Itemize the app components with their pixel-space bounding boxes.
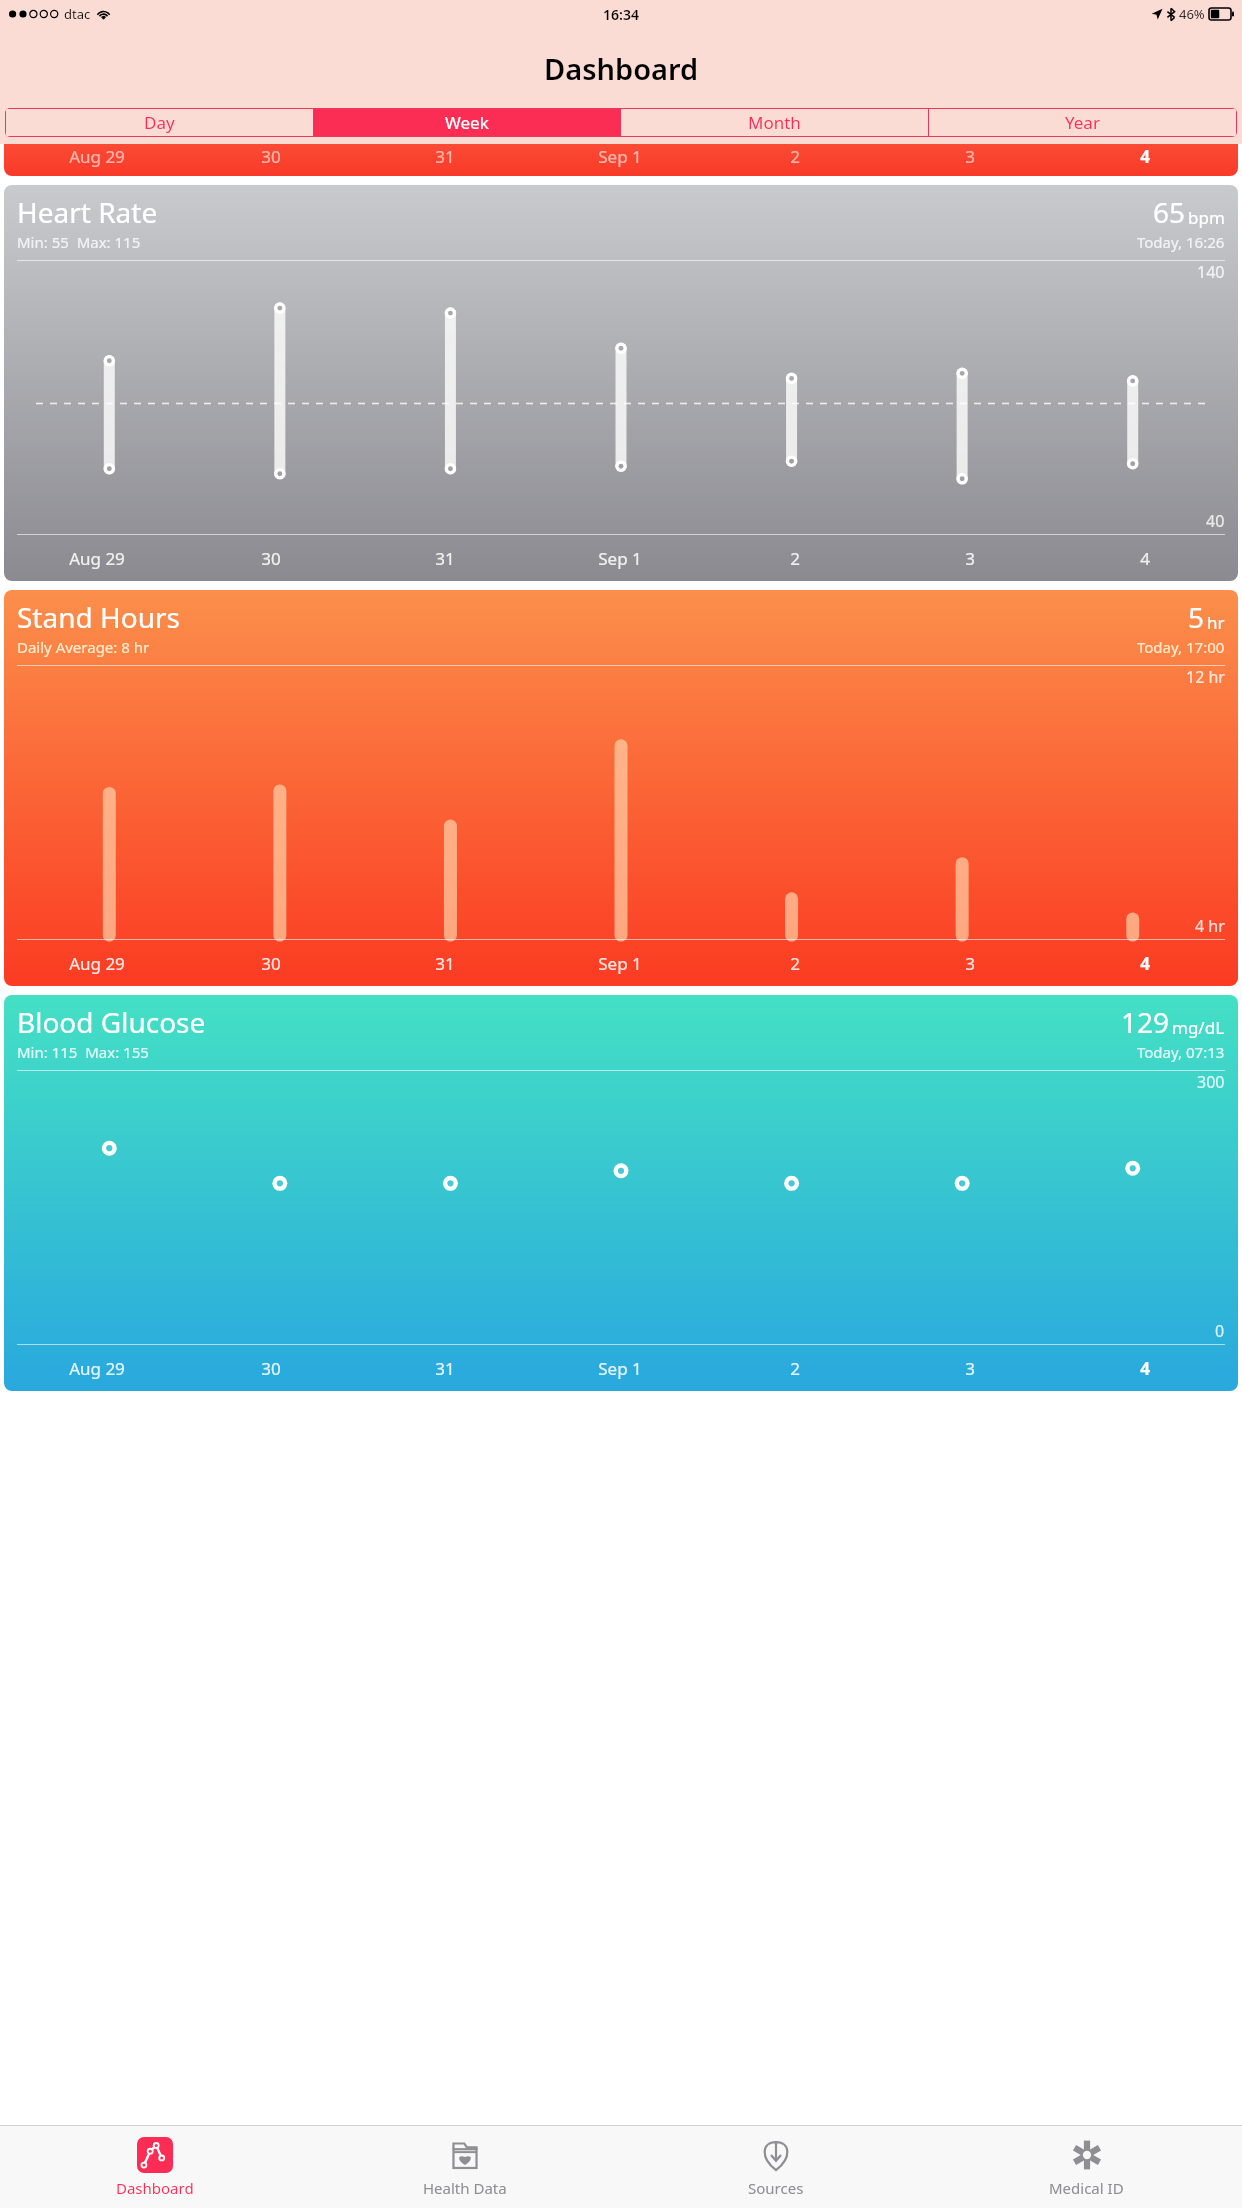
staticText: Aug 29 [69,145,125,168]
button[interactable]: Sources [620,2126,931,2208]
other: Sources [758,2137,794,2173]
staticText: hr [1207,611,1225,634]
staticText: 16:34 [603,5,639,24]
staticText: Sep 1 [598,952,642,975]
button[interactable]: Aug 29 [4,144,1238,176]
staticText: 3 [965,547,975,570]
staticText: Sep 1 [598,547,642,570]
staticText: 129 [1121,1003,1170,1041]
staticText: 5 [1188,598,1205,636]
button[interactable]: Blood Glucose [4,995,1238,1391]
staticText: Dashboard [544,49,699,88]
staticText: Today, 07:13 [1137,1042,1225,1062]
staticText: Daily Average: 8 hr [17,637,150,657]
staticText: Today, 17:00 [1137,637,1225,657]
staticText: Sep 1 [598,145,642,168]
staticText: bpm [1188,206,1225,229]
staticText: 2 [790,145,800,168]
staticText: 40 [1206,510,1225,532]
button[interactable]: Heart Rate [4,185,1238,581]
staticText: 140 [1197,261,1225,283]
staticText: Week [445,111,489,134]
staticText: Stand Hours [17,598,180,636]
button[interactable]: Medical ID [931,2126,1242,2208]
staticText: 3 [965,1357,975,1380]
staticText: Blood Glucose [17,1003,206,1041]
staticText: 30 [261,145,281,168]
staticText: 30 [261,1357,281,1380]
staticText: 31 [435,1357,455,1380]
staticText: Aug 29 [69,547,125,570]
staticText: Health Data [423,2178,507,2198]
staticText: Heart Rate [17,193,158,231]
staticText: mg/dL [1172,1016,1225,1039]
staticText: Today, 16:26 [1137,232,1225,252]
other: Health Data [447,2137,483,2173]
staticText: 3 [965,145,975,168]
staticText: 4 hr [1195,915,1225,937]
staticText: 300 [1197,1071,1225,1093]
button[interactable]: Week [314,109,620,136]
staticText: 12 hr [1186,666,1225,688]
staticText: 2 [790,1357,800,1380]
staticText: Day [144,111,175,134]
staticText: 31 [435,145,455,168]
staticText: 46% [1179,5,1205,23]
staticText: 30 [261,547,281,570]
staticText: 4 [1140,952,1150,975]
staticText: 30 [261,952,281,975]
button[interactable]: Month [621,109,928,136]
staticText: Min: 115 Max: 155 [17,1042,149,1062]
other: Dashboard [137,2137,173,2173]
staticText: Sep 1 [598,1357,642,1380]
staticText: 3 [965,952,975,975]
button[interactable]: Health Data [310,2126,620,2208]
staticText: 0 [1215,1320,1225,1342]
staticText: 31 [435,547,455,570]
staticText: Year [1065,111,1100,134]
staticText: 31 [435,952,455,975]
button[interactable]: Stand Hours [4,590,1238,986]
staticText: 4 [1140,547,1150,570]
staticText: Aug 29 [69,1357,125,1380]
staticText: 4 [1140,1357,1150,1380]
other: Medical ID [1069,2137,1105,2173]
staticText: dtac [64,5,91,23]
button[interactable]: Day [6,109,313,136]
staticText: 65 [1153,193,1186,231]
staticText: Medical ID [1049,2178,1124,2198]
staticText: Min: 55 Max: 115 [17,232,141,252]
staticText: Sources [748,2178,804,2198]
staticText: Dashboard [116,2178,194,2198]
button[interactable]: Dashboard [0,2126,310,2208]
staticText: 4 [1140,145,1150,168]
staticText: Month [748,111,801,134]
staticText: Aug 29 [69,952,125,975]
staticText: 2 [790,952,800,975]
button[interactable]: Year [929,109,1236,136]
staticText: 2 [790,547,800,570]
